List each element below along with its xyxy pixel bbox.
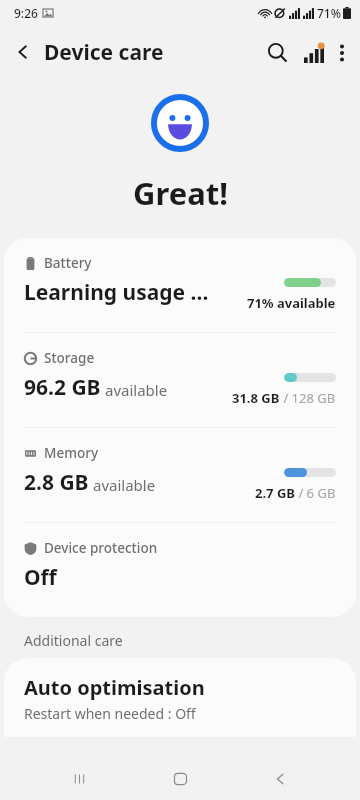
button[interactable]: Back (259, 758, 302, 800)
staticText: Device protection (44, 539, 158, 557)
staticText: 96.2 GB (24, 373, 101, 402)
staticText: Learning usage ... (24, 278, 209, 307)
staticText: 2.8 GB (24, 468, 89, 497)
staticText: 2.7 GB (255, 484, 295, 502)
staticText: Auto optimisation (24, 674, 205, 701)
button[interactable]: Home (159, 758, 202, 800)
button[interactable]: Search (259, 34, 296, 71)
button[interactable]: Device protection (4, 523, 356, 617)
staticText: 71% available (247, 294, 336, 312)
staticText: Off (24, 563, 57, 592)
staticText: Additional care (24, 631, 123, 650)
button[interactable]: Battery (4, 238, 356, 332)
staticText: / 6 GB (295, 484, 336, 502)
staticText: Battery (44, 254, 92, 272)
button[interactable]: More options (332, 36, 352, 70)
staticText: Memory (44, 444, 99, 462)
staticText: Great! (133, 172, 228, 214)
button[interactable]: Usage chart (296, 35, 332, 71)
button[interactable]: Recent apps (58, 758, 101, 800)
staticText: 9:26 (14, 5, 38, 21)
button[interactable]: Storage (4, 333, 356, 427)
button[interactable]: Memory (4, 428, 356, 522)
staticText: / 128 GB (280, 389, 336, 407)
button[interactable]: Back (0, 35, 38, 69)
staticText: available (93, 475, 156, 495)
staticText: Device care (44, 38, 164, 67)
staticText: Restart when needed : Off (24, 704, 196, 723)
staticText: 71% (317, 5, 341, 21)
button[interactable]: Auto optimisation (4, 658, 356, 737)
staticText: available (105, 380, 168, 400)
staticText: 31.8 GB (232, 389, 280, 407)
staticText: Storage (44, 349, 95, 367)
